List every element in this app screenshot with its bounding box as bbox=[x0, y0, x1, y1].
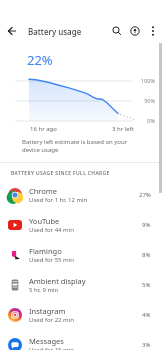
staticText: 9% bbox=[142, 221, 151, 229]
button[interactable]: Back bbox=[4, 21, 24, 41]
button[interactable]: More options bbox=[145, 22, 162, 40]
staticText: 100% bbox=[140, 77, 155, 84]
staticText: 3 hr left bbox=[112, 125, 134, 133]
staticText: 3% bbox=[142, 341, 151, 349]
button[interactable]: Help bbox=[126, 22, 144, 40]
staticText: Instagram bbox=[29, 306, 66, 316]
button[interactable]: YouTube bbox=[0, 210, 162, 240]
button[interactable]: Ambient display bbox=[0, 270, 162, 300]
staticText: 5 hr, 9 min bbox=[29, 286, 59, 294]
staticText: Used for 1 hr, 12 min bbox=[29, 196, 88, 204]
staticText: 5% bbox=[142, 281, 151, 289]
staticText: Used for 44 min bbox=[29, 226, 74, 234]
staticText: 22% bbox=[27, 51, 53, 69]
staticText: Used for 55 min bbox=[29, 256, 74, 264]
staticText: BATTERY USAGE SINCE FULL CHARGE bbox=[11, 170, 110, 177]
staticText: 4% bbox=[142, 311, 151, 319]
staticText: Used for 22 min bbox=[29, 316, 74, 324]
staticText: Messages bbox=[29, 336, 64, 346]
staticText: Ambient display bbox=[29, 276, 86, 286]
staticText: 0% bbox=[147, 117, 155, 124]
staticText: YouTube bbox=[29, 216, 60, 226]
staticText: 27% bbox=[139, 191, 151, 199]
staticText: Chrome bbox=[29, 186, 58, 196]
staticText: 16 hr ago bbox=[30, 125, 57, 133]
staticText: 8% bbox=[142, 251, 151, 259]
staticText: Flamingo bbox=[29, 246, 62, 256]
button[interactable]: Instagram bbox=[0, 300, 162, 330]
staticText: Used for 15 min bbox=[29, 346, 74, 350]
button[interactable]: Flamingo bbox=[0, 240, 162, 270]
staticText: Battery usage bbox=[28, 26, 82, 37]
button[interactable]: Search bbox=[108, 22, 126, 40]
staticText: Battery left estimate is based on your d… bbox=[22, 138, 136, 154]
staticText: 50% bbox=[144, 97, 155, 104]
button[interactable]: Messages bbox=[0, 330, 162, 350]
button[interactable]: Chrome bbox=[0, 180, 162, 210]
